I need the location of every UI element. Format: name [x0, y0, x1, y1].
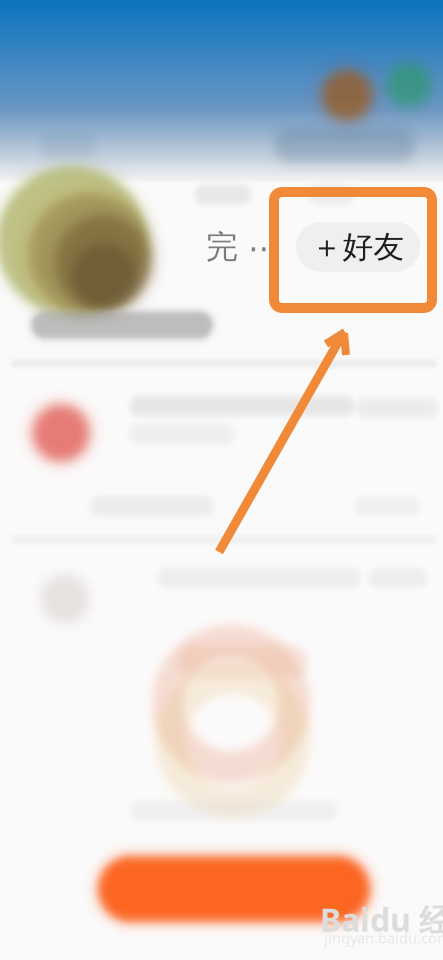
- staticText: Baidu 经验: [320, 898, 443, 941]
- button[interactable]: [84, 842, 384, 936]
- button[interactable]: ＋好友: [296, 222, 420, 272]
- staticText: ＋好友: [311, 228, 404, 266]
- staticText: jingyan.baidu.com: [324, 928, 443, 947]
- button[interactable]: 完 ⋯: [203, 224, 283, 270]
- staticText: 完 ⋯: [206, 227, 280, 267]
